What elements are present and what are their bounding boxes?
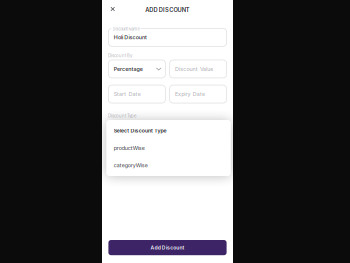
staticText: Discount Name xyxy=(112,26,139,31)
staticText: Add Discount xyxy=(150,244,185,251)
button[interactable]: Add Discount xyxy=(108,240,227,255)
staticText: ADD DISCOUNT xyxy=(145,6,190,13)
button[interactable]: Close xyxy=(105,1,120,16)
staticText: Discount Type xyxy=(108,113,136,118)
staticText: Holi Discount xyxy=(114,34,147,41)
button[interactable]: Select Discount Type xyxy=(106,122,231,139)
staticText: categoryWise xyxy=(114,162,148,169)
button[interactable]: categoryWise xyxy=(106,157,231,174)
staticText: Percentage xyxy=(114,66,143,72)
staticText: Discount By xyxy=(108,53,132,58)
staticText: Start Date xyxy=(114,91,141,97)
staticText: productWise xyxy=(114,145,145,151)
staticText: Select Discount Type xyxy=(114,127,167,134)
staticText: Discount Value xyxy=(175,66,213,72)
staticText: Expiry Date xyxy=(175,91,205,97)
button[interactable]: productWise xyxy=(106,139,231,157)
